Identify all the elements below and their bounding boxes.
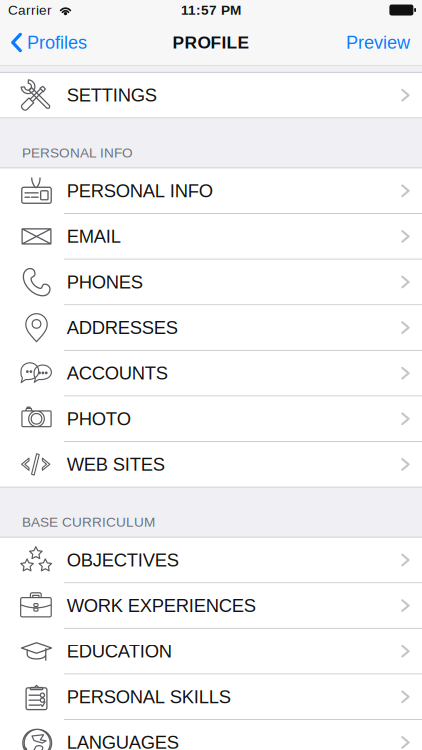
staticText: Carrier: [8, 2, 52, 18]
staticText: EDUCATION: [67, 641, 172, 661]
button[interactable]: WEB SITES: [0, 442, 422, 488]
staticText: SETTINGS: [67, 85, 157, 105]
button[interactable]: OBJECTIVES: [0, 538, 422, 583]
button[interactable]: ADDRESSES: [0, 305, 422, 351]
button[interactable]: EMAIL: [0, 214, 422, 260]
staticText: PROFILE: [172, 33, 249, 52]
staticText: PERSONAL SKILLS: [67, 686, 231, 707]
button[interactable]: ACCOUNTS: [0, 351, 422, 396]
staticText: ADDRESSES: [67, 317, 178, 338]
staticText: EMAIL: [67, 226, 121, 247]
button[interactable]: EDUCATION: [0, 629, 422, 674]
staticText: WORK EXPERIENCES: [67, 595, 256, 616]
button[interactable]: PERSONAL INFO: [0, 168, 422, 214]
button[interactable]: SETTINGS: [0, 73, 422, 118]
staticText: PERSONAL INFO: [22, 145, 133, 160]
staticText: LANGUAGES: [67, 732, 179, 750]
button[interactable]: Profiles: [0, 20, 95, 65]
staticText: PERSONAL INFO: [67, 180, 213, 201]
staticText: PHONES: [67, 272, 143, 292]
staticText: BASE CURRICULUM: [22, 514, 155, 530]
staticText: WEB SITES: [67, 454, 165, 475]
staticText: Profiles: [27, 32, 87, 53]
staticText: Preview: [346, 32, 410, 53]
staticText: PHOTO: [67, 408, 131, 429]
staticText: OBJECTIVES: [67, 550, 179, 570]
button[interactable]: Preview: [338, 20, 422, 65]
button[interactable]: PHONES: [0, 260, 422, 305]
staticText: 11:57 PM: [181, 2, 241, 18]
button[interactable]: PERSONAL SKILLS: [0, 674, 422, 720]
button[interactable]: PHOTO: [0, 396, 422, 442]
button[interactable]: LANGUAGES: [0, 720, 422, 750]
button[interactable]: WORK EXPERIENCES: [0, 583, 422, 629]
staticText: ACCOUNTS: [67, 363, 168, 383]
